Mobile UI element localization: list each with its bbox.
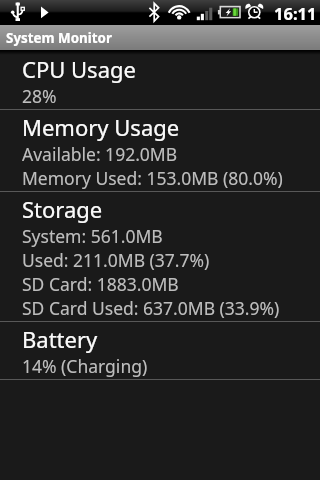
staticText: SD Card: 1883.0MB xyxy=(22,272,179,296)
staticText: 14% (Charging) xyxy=(22,354,148,378)
staticText: System: 561.0MB xyxy=(22,224,163,248)
staticText: 28% xyxy=(22,84,57,108)
staticText: CPU Usage xyxy=(22,54,136,84)
staticText: Used: 211.0MB (37.7%) xyxy=(22,248,210,272)
staticText: Battery xyxy=(22,324,98,354)
staticText: System Monitor xyxy=(6,29,112,47)
staticText: Available: 192.0MB xyxy=(22,142,178,166)
button[interactable]: Storage xyxy=(0,192,320,321)
staticText: Memory Used: 153.0MB (80.0%) xyxy=(22,166,283,190)
staticText: Storage xyxy=(22,194,103,224)
button[interactable]: CPU Usage xyxy=(0,50,320,109)
staticText: Memory Usage xyxy=(22,112,180,142)
button[interactable]: System Monitor xyxy=(0,25,320,50)
staticText: SD Card Used: 637.0MB (33.9%) xyxy=(22,296,280,320)
button[interactable]: Memory Usage xyxy=(0,110,320,191)
staticText: 16:11 xyxy=(274,2,317,24)
button[interactable]: Battery xyxy=(0,322,320,379)
other: Status icons: USB, media playing, Blueto… xyxy=(0,0,320,25)
